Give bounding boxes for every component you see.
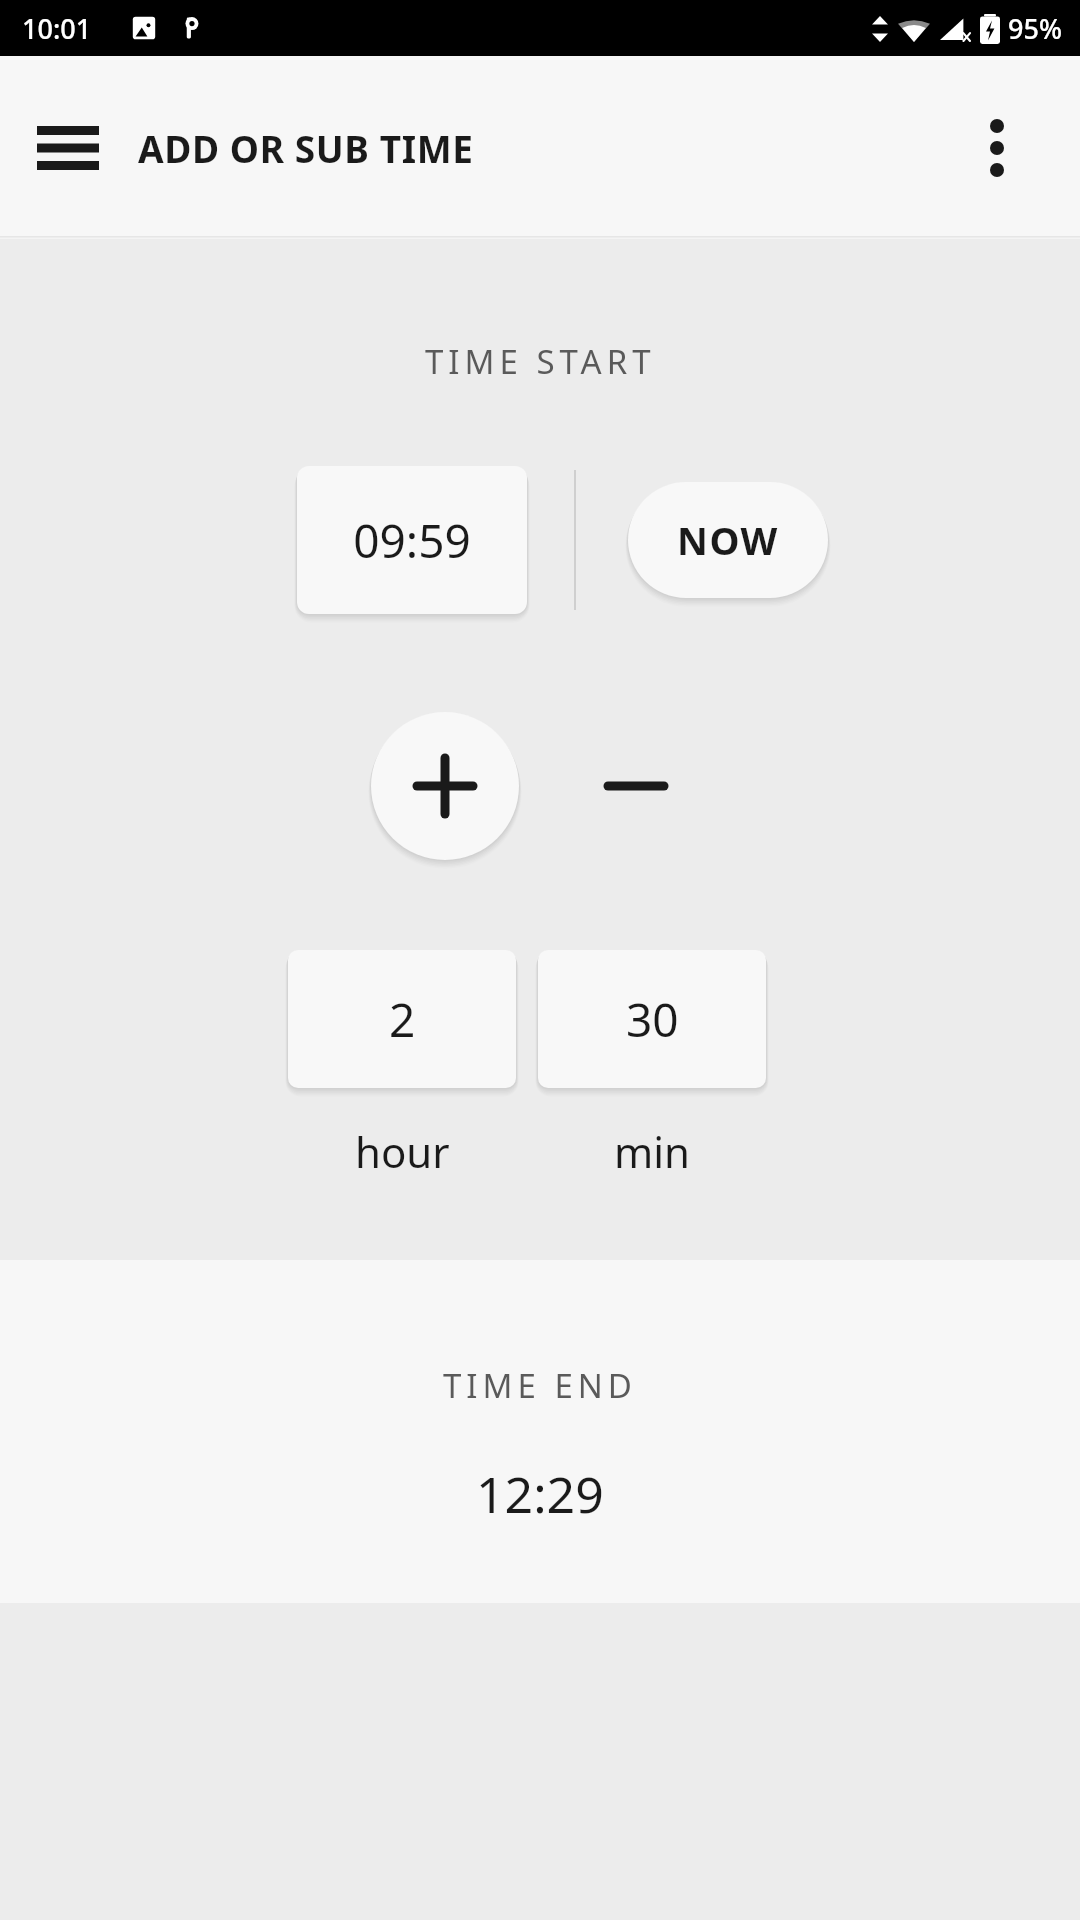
- staticText: 12:29: [476, 1460, 604, 1528]
- staticText: ADD OR SUB TIME: [138, 123, 474, 173]
- staticText: TIME END: [443, 1363, 637, 1408]
- button[interactable]: 30: [538, 950, 766, 1088]
- staticText: TIME START: [425, 339, 656, 384]
- staticText: 2: [389, 988, 416, 1051]
- staticText: 30: [626, 988, 679, 1051]
- button[interactable]: 2: [288, 950, 516, 1088]
- staticText: NOW: [677, 514, 779, 566]
- staticText: 95%: [1008, 10, 1062, 47]
- button[interactable]: Open navigation menu: [28, 108, 108, 188]
- button[interactable]: 09:59: [297, 466, 527, 614]
- button[interactable]: NOW: [628, 482, 828, 598]
- staticText: min: [614, 1123, 691, 1180]
- staticText: 10:01: [22, 10, 92, 47]
- button[interactable]: More options: [960, 111, 1034, 185]
- button[interactable]: Subtract time: [580, 730, 692, 842]
- button[interactable]: Add time: [371, 712, 519, 860]
- staticText: 09:59: [353, 509, 471, 572]
- staticText: hour: [355, 1123, 450, 1180]
